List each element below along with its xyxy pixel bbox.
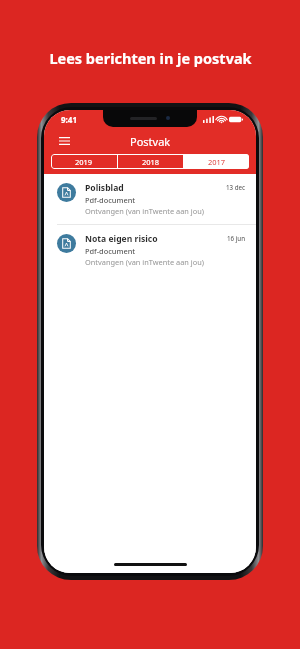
staticText: Ontvangen (van inTwente aan jou) bbox=[85, 206, 204, 216]
staticText: 13 dec bbox=[226, 183, 246, 191]
button[interactable]: 2019 bbox=[51, 154, 117, 169]
staticText: 16 jun bbox=[227, 234, 246, 242]
button[interactable]: Menu bbox=[52, 129, 76, 153]
button[interactable]: Nota eigen risico bbox=[44, 225, 256, 275]
staticText: Nota eigen risico bbox=[85, 233, 158, 245]
staticText: Ontvangen (van inTwente aan jou) bbox=[85, 257, 204, 267]
staticText: Pdf-document bbox=[85, 195, 136, 205]
staticText: 2017 bbox=[208, 157, 226, 167]
button[interactable]: 2017 bbox=[184, 154, 249, 169]
button[interactable]: 2018 bbox=[118, 154, 183, 169]
staticText: Postvak bbox=[130, 134, 171, 149]
staticText: 2018 bbox=[142, 157, 160, 167]
staticText: Lees berichten in je postvak bbox=[49, 48, 252, 68]
staticText: 2019 bbox=[75, 157, 93, 167]
button[interactable]: Polisblad bbox=[44, 174, 256, 224]
staticText: Pdf-document bbox=[85, 246, 136, 256]
staticText: 9:41 bbox=[61, 114, 77, 125]
staticText: Polisblad bbox=[85, 182, 124, 194]
